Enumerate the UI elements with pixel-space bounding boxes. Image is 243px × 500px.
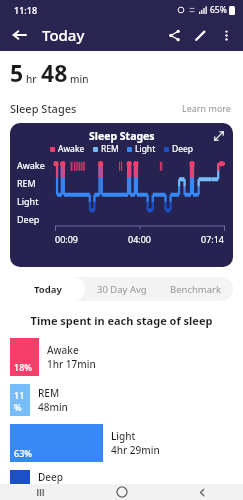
button[interactable]: Home bbox=[81, 484, 162, 500]
staticText: Light bbox=[135, 143, 156, 155]
staticText: 11% bbox=[14, 389, 30, 413]
staticText: 18% bbox=[14, 361, 32, 373]
button[interactable]: Recent apps bbox=[0, 484, 81, 500]
staticText: 07:14 bbox=[201, 233, 225, 245]
staticText: Deep bbox=[172, 143, 194, 155]
staticText: Light bbox=[111, 429, 136, 443]
button[interactable]: More options bbox=[213, 22, 239, 48]
staticText: REM bbox=[101, 143, 119, 155]
button[interactable]: Back bbox=[162, 484, 243, 500]
staticText: 5 bbox=[10, 57, 24, 88]
button[interactable]: Learn more bbox=[180, 100, 233, 116]
staticText: Deep bbox=[17, 213, 40, 225]
staticText: 48min bbox=[38, 400, 68, 414]
staticText: Today bbox=[42, 25, 85, 45]
staticText: Benchmark bbox=[170, 283, 222, 296]
staticText: Today bbox=[34, 283, 62, 296]
staticText: Sleep Stages bbox=[89, 129, 155, 143]
staticText: Learn more bbox=[182, 102, 231, 114]
staticText: 1hr 17min bbox=[47, 357, 96, 371]
button[interactable]: 30 Day Avg bbox=[85, 277, 159, 301]
staticText: 65% bbox=[210, 4, 227, 16]
staticText: Awake bbox=[17, 159, 45, 171]
button[interactable]: Benchmark bbox=[159, 277, 233, 301]
staticText: 63% bbox=[14, 447, 32, 459]
staticText: 30 Day Avg bbox=[97, 283, 147, 296]
button[interactable]: 11% bbox=[10, 384, 30, 416]
button[interactable]: Share bbox=[161, 22, 187, 48]
staticText: Awake bbox=[58, 143, 85, 155]
staticText: Time spent in each stage of sleep bbox=[0, 313, 243, 328]
button[interactable]: Expand chart bbox=[210, 127, 228, 145]
staticText: Awake bbox=[47, 343, 79, 357]
staticText: 04:00 bbox=[128, 233, 152, 245]
button[interactable]: Today bbox=[10, 277, 85, 301]
staticText: REM bbox=[38, 386, 60, 400]
staticText: Deep bbox=[38, 470, 63, 484]
staticText: min bbox=[70, 72, 89, 86]
staticText: Light bbox=[17, 195, 39, 207]
staticText: hr bbox=[26, 72, 37, 86]
staticText: 4hr 29min bbox=[111, 443, 160, 457]
button[interactable]: Back bbox=[6, 22, 32, 48]
button[interactable]: 18% bbox=[10, 338, 39, 376]
staticText: REM bbox=[17, 177, 36, 189]
button[interactable]: 63% bbox=[10, 424, 103, 462]
staticText: 48 bbox=[41, 57, 68, 88]
button[interactable]: Edit bbox=[187, 22, 213, 48]
staticText: 00:09 bbox=[55, 233, 79, 245]
staticText: 11:18 bbox=[14, 4, 38, 16]
staticText: Sleep Stages bbox=[10, 101, 77, 116]
